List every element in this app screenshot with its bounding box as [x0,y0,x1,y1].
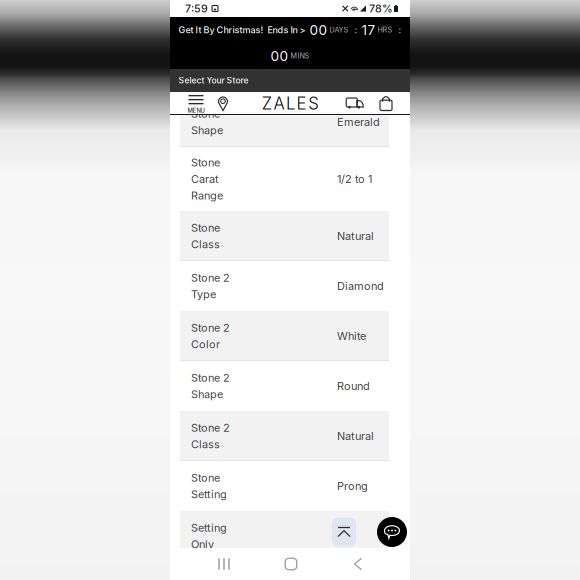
staticText: Stone [191,471,220,484]
staticText: 00 [305,22,327,38]
staticText: Only [191,538,214,551]
button[interactable]: Stone [180,211,389,261]
staticText: Setting [191,521,227,534]
button[interactable]: Menu [184,92,208,115]
staticText: Stone 2 [191,271,230,284]
staticText: Select Your Store [178,75,248,86]
staticText: DAYS [327,26,348,34]
staticText: White [337,329,366,343]
staticText: Stone [191,107,220,120]
staticText: Diamond [337,279,384,293]
staticText: Type [191,288,216,301]
staticText: Prong [337,479,368,493]
staticText: Stone 2 [191,421,230,434]
button[interactable]: Stone 2 [180,261,389,311]
staticText: MINS [288,52,309,60]
staticText: 00 [270,48,288,64]
staticText: 1/2 to 1 [337,172,372,186]
button[interactable]: Back [324,548,392,580]
button[interactable]: Select Your Store [170,69,410,92]
staticText: Range [191,189,223,202]
staticText: MENU [187,107,204,114]
staticText: Get It By Christmas! [178,24,263,35]
staticText: Natural [337,429,374,443]
button[interactable]: Stone 2 [180,361,389,411]
staticText: 7:59 [185,2,208,15]
button[interactable]: Chat [377,517,407,547]
button[interactable]: Stone [180,97,389,147]
staticText: : [348,24,357,35]
staticText: Round [337,379,370,393]
staticText: ZALES [262,93,319,114]
button[interactable]: Store locator [208,92,238,115]
staticText: Shape [191,388,223,401]
button[interactable]: Setting [180,511,389,561]
staticText: Stone 2 [191,321,230,334]
button[interactable]: Stone [180,461,389,511]
staticText: Stone 2 [191,371,230,384]
staticText: Color [191,338,220,351]
button[interactable]: Recent apps [190,548,258,580]
staticText: 17 [357,22,375,38]
button[interactable]: Scroll to top [332,517,356,546]
staticText: HRS [375,26,392,34]
staticText: Carat [191,172,219,186]
staticText: : [392,24,401,35]
button[interactable]: Stone 2 [180,311,389,361]
staticText: Stone [191,156,220,169]
staticText: Shape [191,124,223,137]
button[interactable]: Track order [338,92,372,115]
button[interactable]: Home [258,548,324,580]
staticText: Class [191,438,220,451]
button[interactable]: Stone 2 [180,411,389,461]
staticText: Class [191,238,220,251]
staticText: Setting [191,488,227,501]
staticText: Natural [337,229,374,243]
button[interactable]: Stone [180,147,389,211]
staticText: 78% [369,2,393,15]
staticText: Stone [191,221,220,234]
staticText: Emerald [337,115,380,129]
staticText: Ends In > [263,24,305,35]
button[interactable]: Shopping bag [372,92,400,115]
